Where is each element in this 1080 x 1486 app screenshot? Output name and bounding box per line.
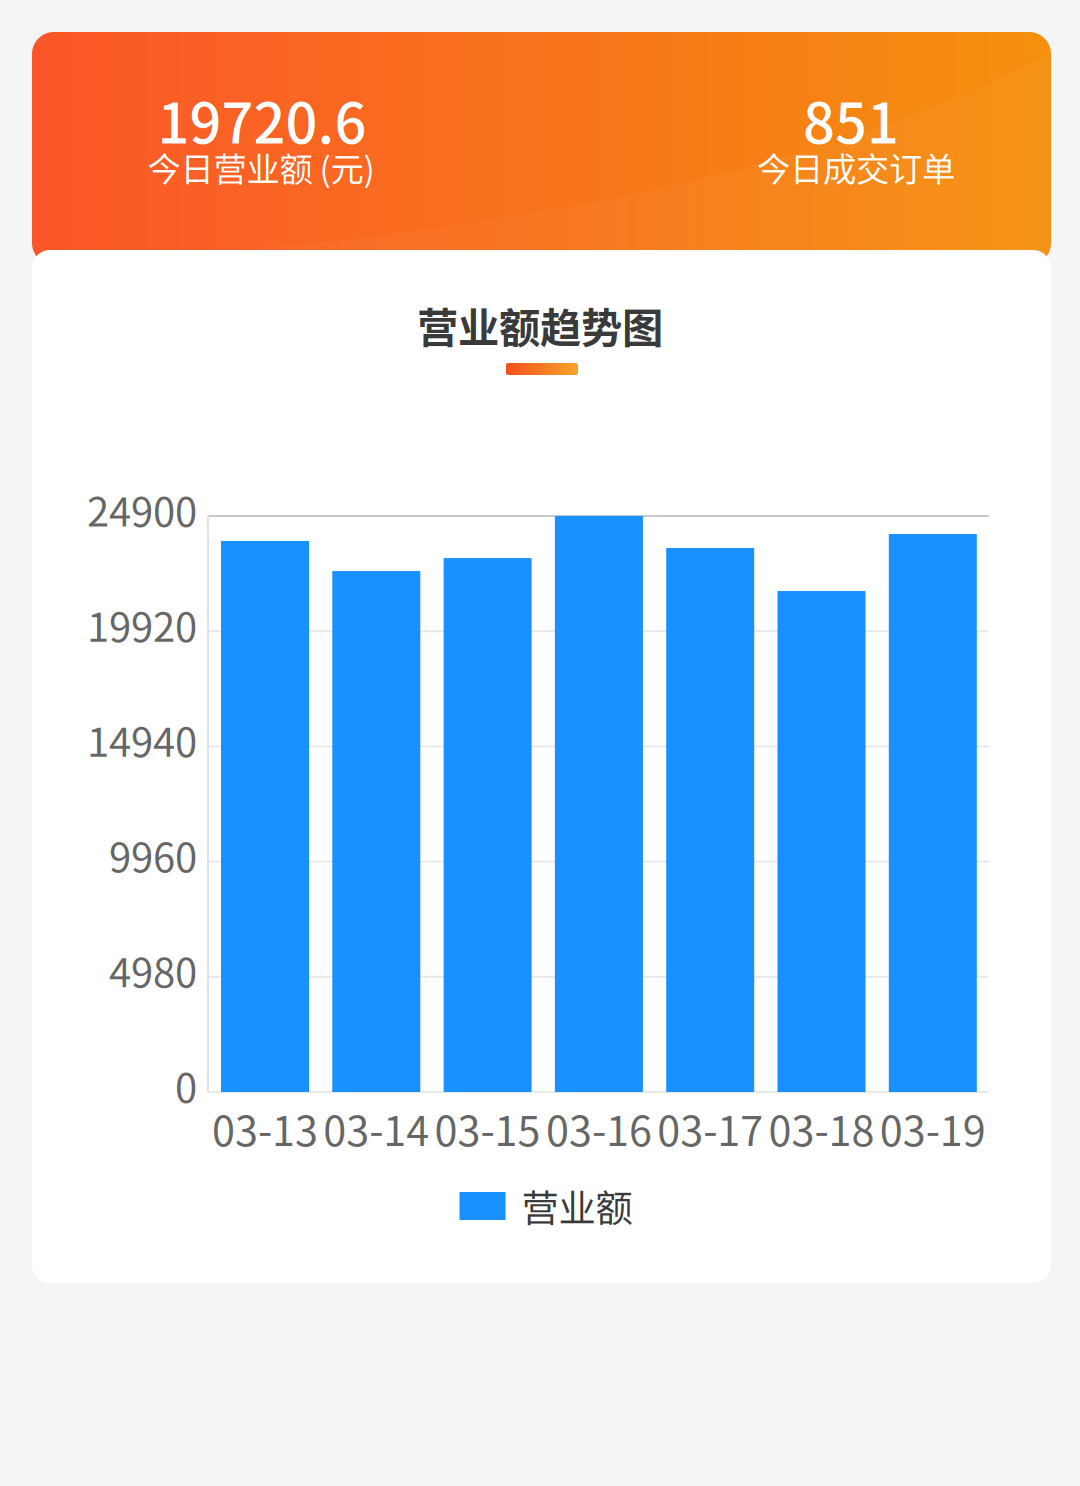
button[interactable]: 营业额 [459, 1179, 632, 1233]
staticText: 03-13 [212, 1098, 318, 1158]
staticText: 营业额 [521, 1179, 632, 1233]
staticText: 03-17 [657, 1098, 763, 1158]
staticText: 03-15 [435, 1098, 541, 1158]
staticText: 03-18 [768, 1098, 874, 1158]
staticText: 03-19 [880, 1098, 986, 1158]
staticText: 19720.6 [157, 78, 366, 160]
staticText: 03-16 [546, 1098, 652, 1158]
staticText: 14940 [87, 710, 197, 768]
staticText: 19920 [87, 595, 197, 653]
staticText: 4980 [109, 941, 197, 999]
staticText: 24900 [87, 480, 197, 538]
staticText: 03-14 [323, 1098, 429, 1158]
staticText: 营业额趋势图 [417, 295, 663, 355]
staticText: 9960 [109, 826, 197, 883]
staticText: 851 [803, 78, 899, 160]
staticText: 今日营业额 (元) [147, 143, 374, 191]
staticText: 今日成交订单 [757, 143, 955, 191]
staticText: 0 [175, 1056, 197, 1114]
button[interactable]: 19720.6 [32, 32, 1051, 265]
